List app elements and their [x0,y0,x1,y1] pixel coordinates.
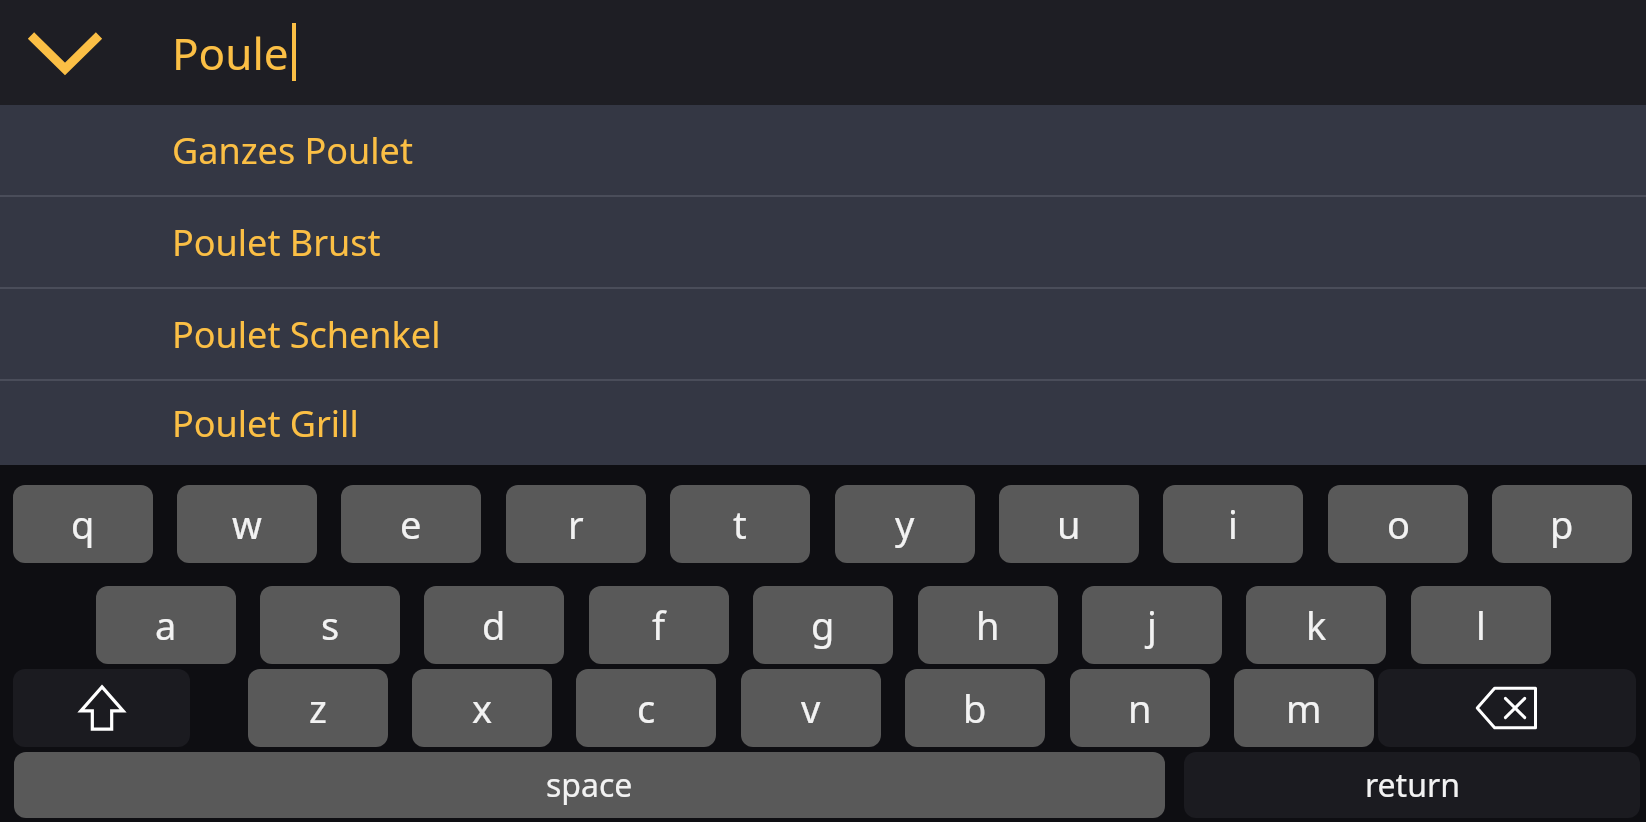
staticText: Poulet Schenkel [172,310,441,359]
button[interactable]: w [177,485,317,563]
button[interactable]: e [341,485,481,563]
staticText: g [811,599,835,651]
staticText: r [568,498,584,550]
staticText: v [801,682,821,734]
staticText: i [1228,498,1238,550]
button[interactable]: space [14,752,1165,818]
staticText: q [71,498,95,550]
staticText: z [309,682,327,734]
staticText: x [472,682,493,734]
button[interactable]: z [248,669,388,747]
staticText: y [895,498,915,550]
button[interactable]: k [1246,586,1386,664]
button[interactable]: Shift [13,669,190,747]
button[interactable]: o [1328,485,1468,563]
staticText: s [321,599,340,651]
staticText: d [482,599,506,651]
button[interactable]: Backspace [1378,669,1636,747]
button[interactable]: u [999,485,1139,563]
button[interactable]: g [753,586,893,664]
button[interactable]: t [670,485,810,563]
staticText: u [1057,498,1081,550]
staticText: e [400,498,422,550]
staticText: p [1550,498,1574,550]
staticText: a [155,599,177,651]
button[interactable]: a [96,586,236,664]
button[interactable]: l [1411,586,1551,664]
button[interactable]: x [412,669,552,747]
staticText: Poulet Grill [172,399,359,448]
button[interactable]: i [1163,485,1303,563]
staticText: c [637,682,656,734]
staticText: j [1147,599,1157,651]
staticText: space [546,763,633,807]
button[interactable]: b [905,669,1045,747]
staticText: Poulet Brust [172,218,381,267]
button[interactable]: v [741,669,881,747]
button[interactable]: Poulet Grill [0,381,1646,465]
staticText: f [652,599,666,651]
button[interactable]: d [424,586,564,664]
staticText: l [1476,599,1486,651]
button[interactable]: n [1070,669,1210,747]
staticText: Ganzes Poulet [172,126,413,175]
button[interactable]: p [1492,485,1632,563]
button[interactable]: s [260,586,400,664]
staticText: k [1306,599,1327,651]
button[interactable]: Poulet Brust [0,197,1646,287]
staticText: o [1387,498,1410,550]
button[interactable]: q [13,485,153,563]
staticText: h [976,599,1000,651]
button[interactable]: f [589,586,729,664]
staticText: w [232,498,262,550]
button[interactable]: y [835,485,975,563]
staticText: n [1128,682,1152,734]
button[interactable]: m [1234,669,1374,747]
button[interactable]: h [918,586,1058,664]
button[interactable]: r [506,485,646,563]
button[interactable]: return [1184,752,1640,818]
staticText: b [963,682,987,734]
button[interactable]: Collapse [18,18,112,88]
staticText: return [1365,763,1460,807]
button[interactable]: Ganzes Poulet [0,105,1646,195]
staticText: Poule [172,23,289,83]
button[interactable]: j [1082,586,1222,664]
staticText: m [1286,682,1322,734]
button[interactable]: c [576,669,716,747]
button[interactable]: Poulet Schenkel [0,289,1646,379]
staticText: t [733,498,747,550]
